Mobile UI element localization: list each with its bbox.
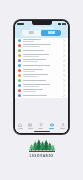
staticText: LESOVARIO bbox=[29, 153, 54, 158]
button[interactable]: List bbox=[46, 123, 57, 131]
button[interactable] bbox=[15, 93, 68, 98]
button[interactable]: Add bbox=[35, 123, 46, 131]
button[interactable] bbox=[15, 63, 68, 68]
button[interactable]: ВСЕ bbox=[22, 30, 41, 36]
button[interactable]: Home bbox=[15, 123, 25, 131]
staticText: МОИ bbox=[48, 31, 55, 35]
button[interactable] bbox=[15, 48, 68, 53]
button[interactable] bbox=[15, 53, 68, 58]
staticText: ВСЕ bbox=[29, 31, 34, 35]
button[interactable] bbox=[15, 88, 68, 93]
button[interactable]: Map bbox=[25, 123, 35, 131]
button[interactable] bbox=[15, 58, 68, 63]
button[interactable]: МОИ bbox=[41, 30, 61, 36]
button[interactable] bbox=[15, 43, 68, 48]
button[interactable] bbox=[15, 78, 68, 83]
button[interactable] bbox=[15, 73, 68, 78]
button[interactable] bbox=[15, 38, 68, 43]
button[interactable] bbox=[15, 68, 68, 73]
button[interactable] bbox=[15, 83, 68, 88]
button[interactable]: Profile bbox=[57, 123, 68, 131]
